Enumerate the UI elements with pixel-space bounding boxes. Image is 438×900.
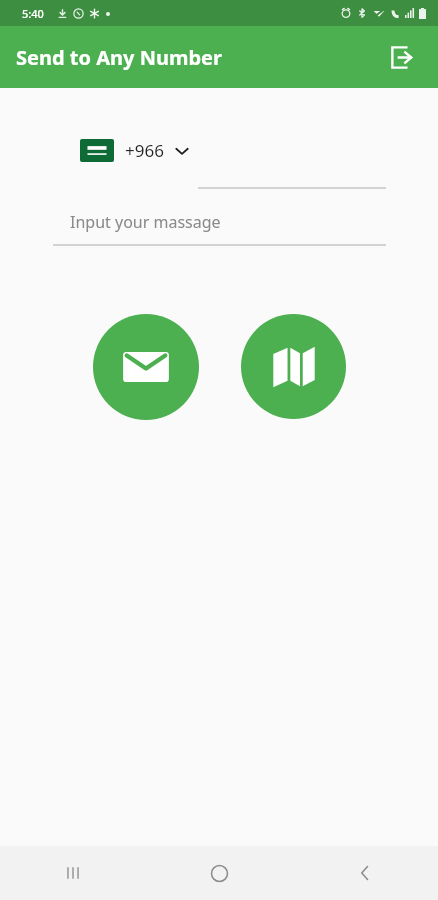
button[interactable]: Home xyxy=(146,846,292,900)
staticText: +966 xyxy=(125,139,164,162)
button[interactable]: Send message xyxy=(93,314,199,420)
button[interactable]: Open map xyxy=(241,314,346,419)
button[interactable]: Input your massage xyxy=(0,207,438,253)
button[interactable]: Recents xyxy=(0,846,146,900)
button[interactable]: Back xyxy=(292,846,438,900)
staticText: Input your massage xyxy=(70,211,221,233)
staticText: 5:40 xyxy=(22,6,44,21)
staticText: Send to Any Number xyxy=(16,44,222,71)
button[interactable]: +966 xyxy=(78,137,192,164)
button[interactable]: Logout xyxy=(380,35,424,79)
